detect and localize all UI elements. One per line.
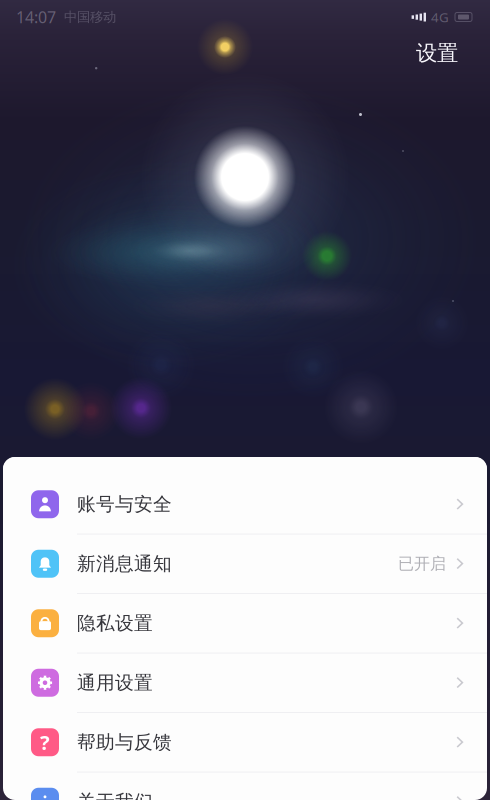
staticText: 已开启	[398, 554, 446, 574]
staticText: 隐私设置	[77, 612, 153, 635]
button[interactable]: 设置	[408, 35, 466, 71]
staticText: 中国移动	[64, 9, 116, 25]
button[interactable]: 账号与安全	[3, 475, 487, 534]
staticText: ?	[40, 729, 50, 756]
staticText: 通用设置	[77, 671, 153, 694]
staticText: 账号与安全	[77, 493, 172, 516]
button[interactable]: ?	[3, 713, 487, 772]
button[interactable]: 关于我们	[3, 772, 487, 800]
staticText: 4G	[431, 8, 449, 26]
button[interactable]: 隐私设置	[3, 594, 487, 653]
staticText: 新消息通知	[77, 552, 172, 575]
staticText: 14:07	[16, 6, 56, 28]
button[interactable]: 通用设置	[3, 653, 487, 713]
staticText: 帮助与反馈	[77, 731, 172, 754]
staticText: 关于我们	[77, 790, 153, 800]
button[interactable]: 新消息通知	[3, 534, 487, 594]
staticText: 设置	[416, 40, 458, 66]
